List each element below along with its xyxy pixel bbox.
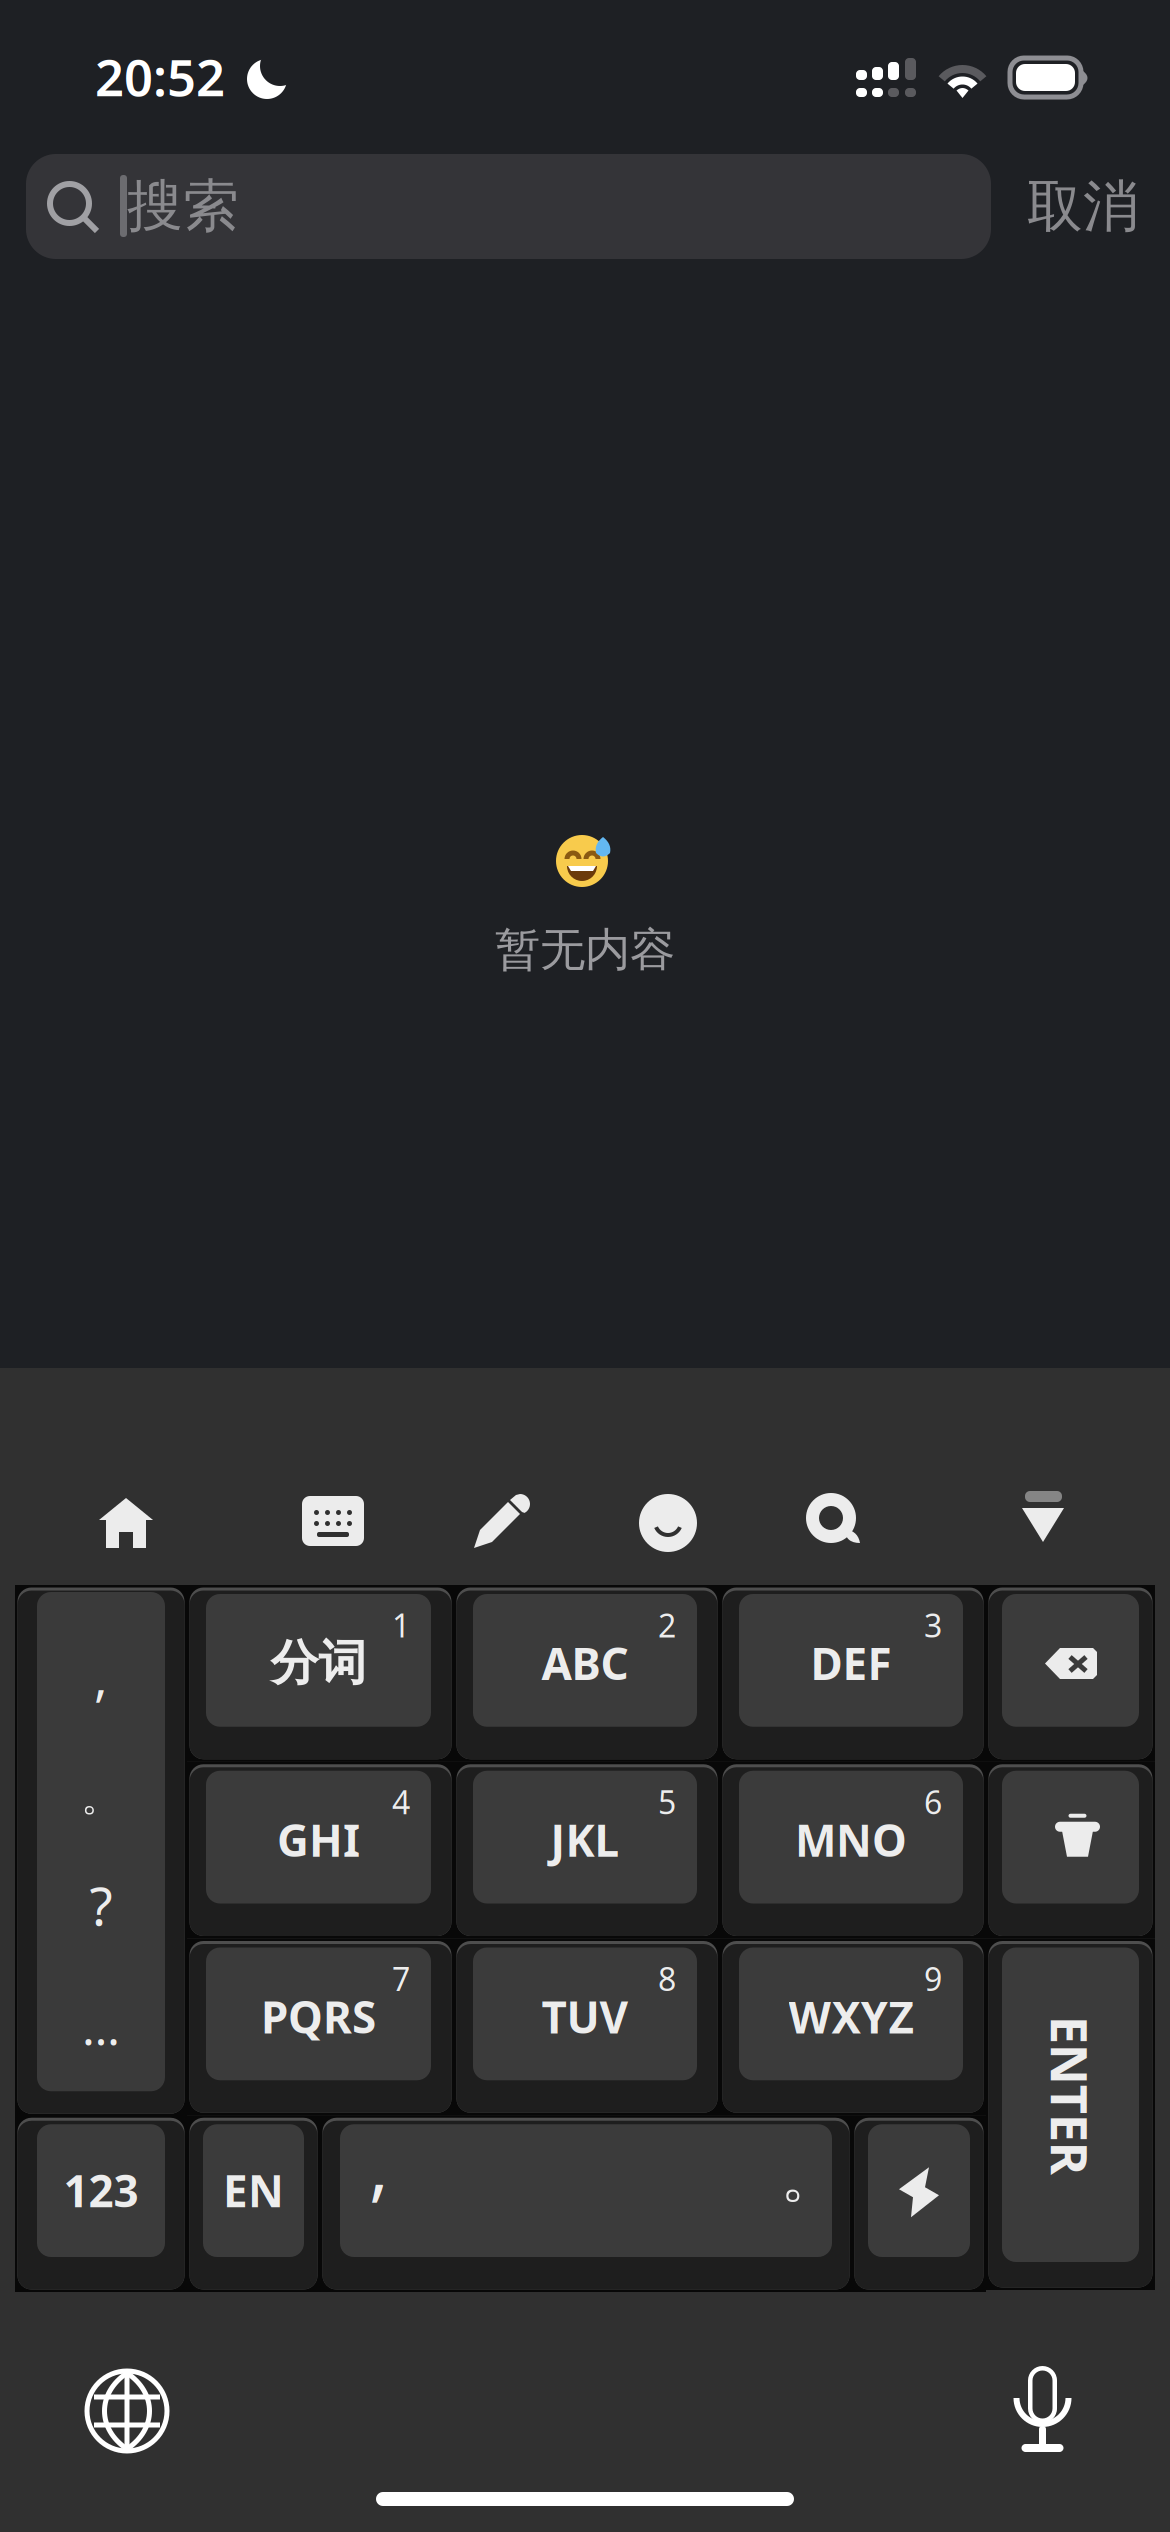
button[interactable]: Keyboard	[302, 1496, 364, 1546]
button[interactable]: ABC 2	[454, 1585, 720, 1762]
button[interactable]: Emoji	[639, 1494, 697, 1552]
button[interactable]: Quick input	[852, 2115, 986, 2292]
staticText: TUV	[541, 1987, 628, 2046]
staticText: ?	[89, 1870, 112, 1940]
button[interactable]: WXYZ 9	[720, 1938, 986, 2115]
staticText: 6	[924, 1780, 942, 1823]
staticText: 。	[81, 1772, 121, 1821]
staticText: 9	[924, 1957, 942, 2000]
button[interactable]: Enter	[986, 1938, 1155, 2290]
staticText: ,	[94, 1642, 108, 1710]
staticText: ABC	[541, 1634, 628, 1692]
staticText: 分词	[270, 1633, 366, 1692]
button[interactable]: Hide keyboard	[1022, 1491, 1065, 1542]
button[interactable]: DEF 3	[720, 1585, 986, 1762]
staticText: 4	[392, 1780, 410, 1823]
button[interactable]: TUV 8	[454, 1938, 720, 2115]
staticText: JKL	[550, 1810, 619, 1869]
button[interactable]: JKL 5	[454, 1762, 720, 1939]
staticText: ENTER	[991, 2062, 1150, 2129]
staticText: 20:52	[95, 43, 225, 110]
staticText: MNO	[795, 1810, 907, 1869]
staticText: 搜索	[127, 172, 239, 240]
staticText: WXYZ	[788, 1987, 913, 2046]
staticText: 123	[63, 2161, 138, 2219]
staticText: 8	[658, 1957, 676, 2000]
button[interactable]: Space	[320, 2115, 852, 2292]
staticText: 。	[780, 2140, 839, 2212]
button[interactable]: 分词 1	[187, 1585, 454, 1762]
staticText: 3	[924, 1604, 942, 1646]
button[interactable]: Clear	[986, 1762, 1155, 1939]
staticText: DEF	[810, 1634, 891, 1692]
staticText: 1	[392, 1604, 410, 1646]
button[interactable]: 取消	[1013, 154, 1153, 259]
button[interactable]: GHI 4	[187, 1762, 454, 1939]
staticText: PQRS	[261, 1987, 376, 2046]
staticText: ,	[369, 2117, 389, 2214]
button[interactable]: Search	[806, 1493, 862, 1549]
staticText: EN	[223, 2161, 284, 2219]
staticText: 暂无内容	[495, 922, 675, 978]
button[interactable]: Delete	[986, 1585, 1155, 1762]
staticText: GHI	[277, 1810, 360, 1869]
button[interactable]: Handwriting	[470, 1494, 528, 1552]
button[interactable]: 搜索	[26, 154, 991, 259]
staticText: …	[82, 1995, 120, 2059]
button[interactable]: Switch language	[87, 2371, 167, 2451]
button[interactable]: English	[187, 2115, 320, 2292]
staticText: 7	[392, 1957, 410, 2000]
button[interactable]: Punctuation	[15, 1585, 187, 2116]
button[interactable]: Home	[97, 1494, 155, 1552]
button[interactable]: MNO 6	[720, 1762, 986, 1939]
staticText: 取消	[1027, 172, 1139, 241]
staticText: 5	[658, 1780, 676, 1823]
staticText: 2	[658, 1604, 676, 1646]
button[interactable]: PQRS 7	[187, 1938, 454, 2115]
button[interactable]: 123	[15, 2115, 187, 2292]
button[interactable]: Dictate	[1014, 2366, 1071, 2454]
